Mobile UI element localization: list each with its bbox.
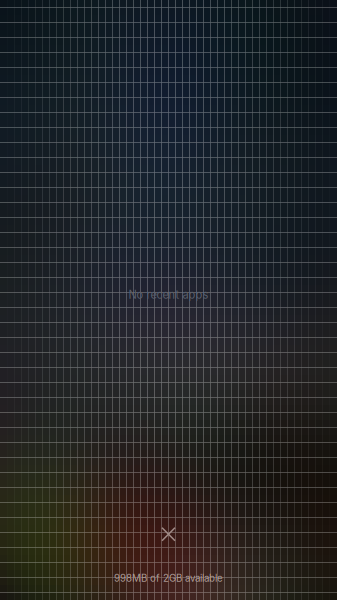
button[interactable]: Close all recent apps [146, 512, 190, 556]
staticText: No recent apps [128, 288, 208, 301]
staticText: 998MB of 2GB available [114, 572, 223, 584]
